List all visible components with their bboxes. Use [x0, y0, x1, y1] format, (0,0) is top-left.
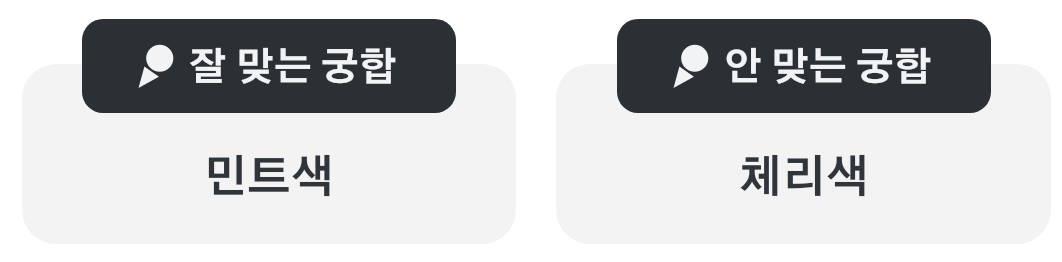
staticText: 잘 맞는 궁합 — [189, 50, 397, 88]
button[interactable]: 아이스크림 — [617, 19, 991, 113]
staticText: 체리색 — [738, 157, 870, 201]
staticText: 민트색 — [203, 157, 335, 201]
button[interactable]: 체리색 — [556, 64, 1051, 244]
button[interactable]: 아이스크림 — [82, 19, 456, 113]
staticText: 안 맞는 궁합 — [724, 50, 932, 88]
other: 아이스크림 — [672, 44, 709, 88]
button[interactable]: 민트색 — [22, 64, 516, 244]
other: 아이스크림 — [137, 44, 174, 88]
